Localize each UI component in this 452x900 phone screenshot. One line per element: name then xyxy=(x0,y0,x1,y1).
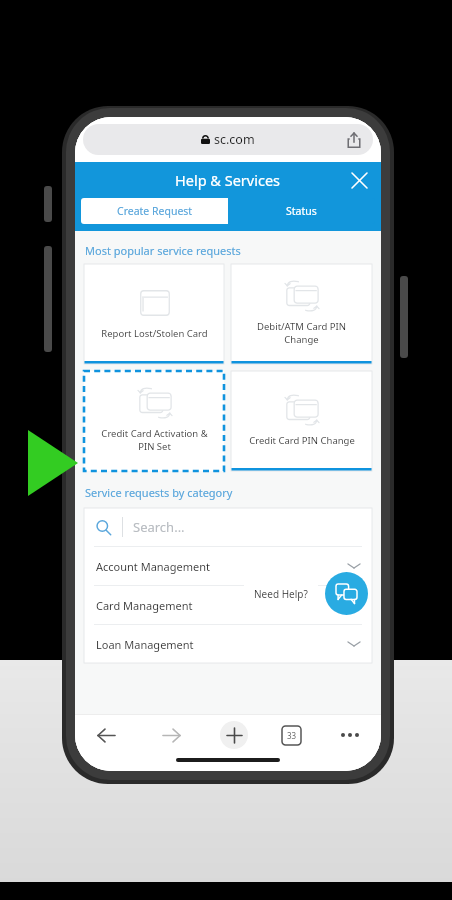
button[interactable]: Account Management xyxy=(96,547,360,585)
staticText: Credit Card PIN Change xyxy=(249,434,355,447)
button[interactable]: Card Management xyxy=(96,586,360,624)
staticText: Create Request xyxy=(117,204,193,218)
staticText: Account Management xyxy=(96,559,211,574)
button[interactable]: Debit/ATM Card PIN Change xyxy=(231,264,372,364)
button[interactable]: Report Lost/Stolen Card xyxy=(84,264,224,364)
button[interactable]: Close xyxy=(347,168,371,192)
button[interactable]: New tab xyxy=(220,721,248,749)
button[interactable]: Share xyxy=(345,131,363,149)
button[interactable]: Search... xyxy=(84,508,372,546)
button[interactable]: Credit Card PIN Change xyxy=(231,371,372,471)
staticText: Service requests by category xyxy=(85,485,233,500)
button[interactable]: Need Help? xyxy=(254,578,308,610)
button[interactable]: More xyxy=(335,720,365,750)
staticText: Most popular service requests xyxy=(85,243,241,258)
button[interactable]: Chat xyxy=(325,572,368,615)
staticText: Credit Card Activation & PIN Set xyxy=(101,427,208,453)
staticText: sc.com xyxy=(214,131,255,148)
button[interactable]: Tabs xyxy=(282,726,301,745)
staticText: Card Management xyxy=(96,598,193,613)
button[interactable]: Forward xyxy=(156,720,186,750)
button[interactable]: sc.com xyxy=(83,124,373,155)
button[interactable]: Back xyxy=(91,720,121,750)
staticText: Report Lost/Stolen Card xyxy=(101,327,208,340)
staticText: Status xyxy=(286,204,317,218)
staticText: Search... xyxy=(133,518,185,536)
staticText: Loan Management xyxy=(96,637,194,652)
button[interactable]: Credit Card Activation & PIN Set xyxy=(84,371,224,471)
staticText: Need Help? xyxy=(254,587,308,601)
staticText: Debit/ATM Card PIN Change xyxy=(257,320,346,346)
staticText: 33 xyxy=(287,730,297,741)
button[interactable]: Create Request xyxy=(81,198,228,224)
button[interactable]: Status xyxy=(228,198,375,224)
button[interactable]: Loan Management xyxy=(96,625,360,663)
staticText: Help & Services xyxy=(175,170,281,190)
